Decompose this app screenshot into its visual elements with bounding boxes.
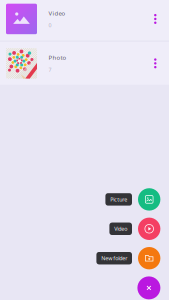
staticText: Video (114, 225, 127, 232)
button[interactable]: Video (0, 218, 160, 240)
staticText: 7 (48, 66, 51, 73)
staticText: Photo (48, 53, 66, 62)
button[interactable]: Video (0, 0, 169, 40)
staticText: Picture (110, 196, 127, 203)
button[interactable]: Close menu (137, 276, 160, 299)
staticText: Video (48, 9, 65, 17)
staticText: 0 (48, 22, 51, 29)
button[interactable]: Photo (0, 42, 169, 85)
button[interactable]: New folder (0, 247, 160, 269)
button[interactable]: Picture (0, 188, 160, 211)
staticText: New folder (101, 255, 127, 262)
